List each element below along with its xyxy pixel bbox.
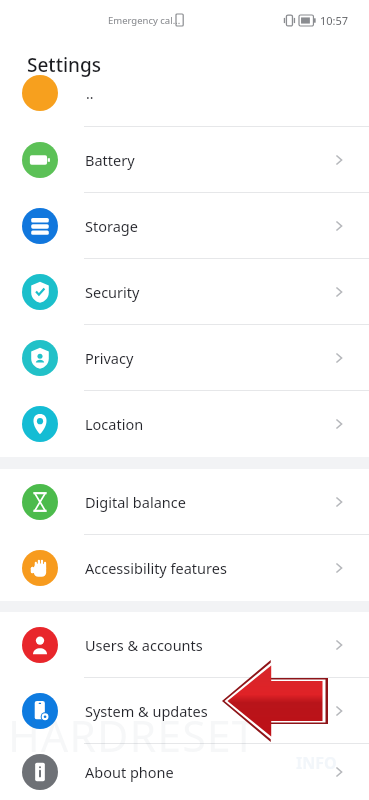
- staticText: Accessibility features: [85, 558, 227, 578]
- button[interactable]: Storage: [0, 193, 369, 259]
- staticText: Privacy: [85, 348, 134, 368]
- staticText: 10:57: [320, 13, 349, 28]
- staticText: Location: [85, 414, 144, 434]
- button[interactable]: Privacy: [0, 325, 369, 391]
- staticText: Emergency cal...: [108, 14, 181, 27]
- staticText: System & updates: [85, 701, 208, 721]
- button[interactable]: Security: [0, 259, 369, 325]
- staticText: Digital balance: [85, 492, 186, 512]
- button[interactable]: Digital balance: [0, 469, 369, 535]
- button[interactable]: Location: [0, 391, 369, 457]
- button[interactable]: Users & accounts: [0, 612, 369, 678]
- staticText: Battery: [85, 150, 135, 170]
- button[interactable]: Accessibility features: [0, 535, 369, 601]
- staticText: Users & accounts: [85, 635, 203, 655]
- button[interactable]: Battery: [0, 127, 369, 193]
- staticText: Settings: [27, 52, 101, 78]
- staticText: HARDRESET: [8, 706, 369, 765]
- staticText: INFO: [296, 752, 337, 774]
- staticText: Storage: [85, 216, 138, 236]
- staticText: Security: [85, 282, 140, 302]
- staticText: About phone: [85, 762, 174, 782]
- button[interactable]: System & updates: [0, 678, 369, 744]
- staticText: ..: [86, 84, 94, 103]
- button[interactable]: About phone: [0, 744, 369, 800]
- other: Pointer to System & updates: [222, 660, 328, 742]
